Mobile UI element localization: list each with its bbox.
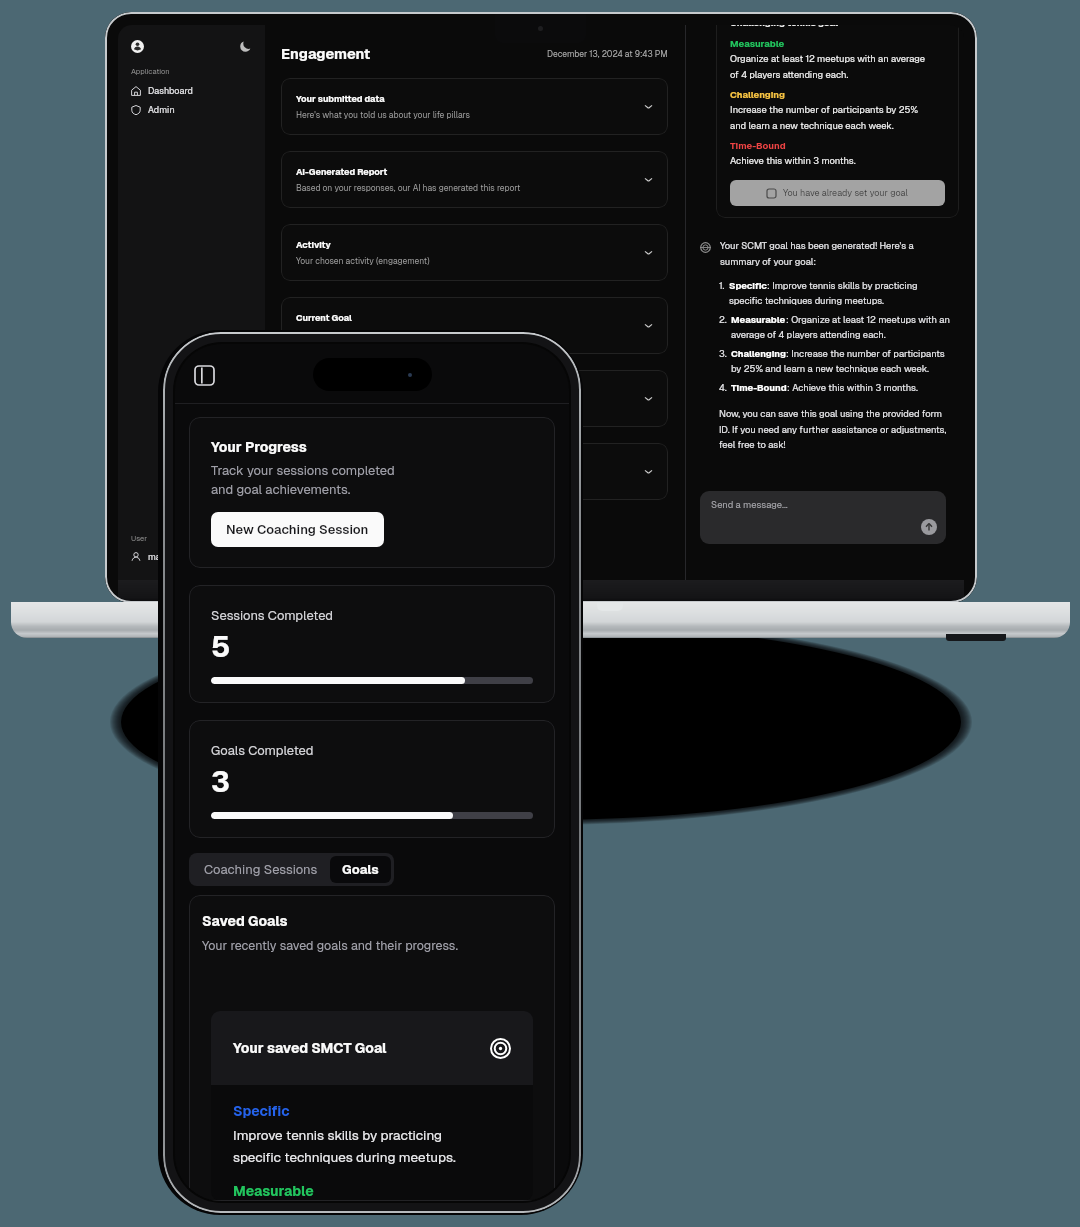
staticText: Challenging [731, 348, 786, 360]
staticText: Measurable [730, 38, 785, 50]
staticText: Based on your responses, our AI has gene… [296, 182, 521, 193]
staticText: User [131, 533, 147, 543]
staticText: Dashboard [148, 85, 193, 97]
button[interactable]: Send [921, 519, 937, 535]
staticText: Goals [342, 861, 379, 878]
staticText: Application [131, 66, 170, 76]
staticText: Track your sessions completed and goal a… [211, 462, 395, 498]
staticText: : Increase the number of participants [786, 348, 945, 360]
button[interactable]: Activity [281, 224, 668, 281]
staticText: Your Progress [211, 438, 307, 456]
button[interactable]: Dashboard [131, 85, 252, 97]
staticText: Now, you can save this goal using the pr… [719, 408, 947, 450]
staticText: Engagement [281, 44, 371, 63]
staticText: by 25% and learn a new technique each we… [731, 363, 929, 375]
button[interactable]: Reflection [281, 370, 668, 427]
staticText: Your recently saved goals and their prog… [202, 937, 458, 953]
staticText: : Organize at least 12 meetups with an [786, 314, 950, 326]
staticText: Your submitted data [296, 93, 385, 105]
button[interactable]: You have already set your goal [730, 180, 945, 206]
staticText: This is your goal to improve your engage… [296, 328, 473, 339]
staticText: Reflect on what you have learned [296, 401, 426, 412]
staticText: New Coaching Session [226, 521, 369, 538]
staticText: You have already set your goal [783, 187, 908, 199]
staticText: Sessions Completed [211, 607, 334, 624]
staticText: Your saved SMCT Goal [233, 1039, 387, 1057]
button[interactable]: Mute [161, 476, 164, 522]
staticText: Activity [296, 239, 331, 251]
staticText: : Improve tennis skills by practicing [767, 280, 918, 292]
staticText: : Achieve this within 3 months. [787, 382, 918, 394]
button[interactable]: Power [580, 674, 583, 786]
button[interactable]: Admin [131, 104, 252, 116]
staticText: Time-Bound [730, 140, 786, 152]
staticText: 5 [211, 628, 231, 666]
staticText: Current Goal [296, 312, 352, 324]
staticText: Coaching [296, 458, 338, 470]
staticText: 2. [719, 314, 727, 326]
staticText: AI-Generated Report [296, 166, 388, 178]
staticText: Saved Goals [202, 912, 288, 930]
staticText: 3 [211, 763, 230, 801]
staticText: 4. [719, 382, 727, 394]
staticText: specific techniques during meetups. [729, 295, 884, 307]
staticText: Your SCMT goal has been generated! Here'… [720, 240, 914, 267]
button[interactable]: New Coaching Session [211, 512, 384, 547]
staticText: December 13, 2024 at 9:43 PM [547, 48, 668, 59]
staticText: Improve tennis skills by practicing spec… [233, 1126, 456, 1166]
button[interactable]: Volume down [161, 693, 164, 757]
button[interactable]: Current Goal [281, 297, 668, 354]
staticText: Increase the number of participants by 2… [730, 104, 918, 131]
staticText: Organize at least 12 meetups with an ave… [730, 53, 926, 80]
button[interactable]: Coaching [281, 443, 668, 500]
button[interactable]: Your saved SMCT Goal [211, 1011, 533, 1085]
button[interactable]: ma [131, 551, 252, 563]
staticText: Measurable [233, 1182, 314, 1200]
staticText: Admin [148, 104, 175, 116]
staticText: ma [148, 551, 161, 563]
staticText: Reflection [296, 385, 342, 397]
staticText: Challenging tennis goal [730, 25, 839, 29]
button[interactable]: Profile [131, 40, 144, 53]
button[interactable]: Send a message... [700, 491, 946, 544]
button[interactable]: Toggle sidebar [193, 364, 215, 386]
button[interactable]: Volume up [161, 610, 164, 674]
staticText: average of 4 players attending each. [731, 329, 886, 341]
button[interactable]: AI-Generated Report [281, 151, 668, 208]
staticText: Measurable [731, 314, 786, 326]
staticText: 1. [719, 280, 725, 292]
staticText: Challenging [730, 89, 785, 101]
staticText: Time-Bound [731, 382, 787, 394]
staticText: Coaching Sessions [204, 861, 318, 878]
staticText: Send a message... [711, 499, 788, 511]
staticText: Achieve this within 3 months. [730, 155, 856, 167]
staticText: Goals Completed [211, 742, 314, 759]
staticText: Here's what you told us about your life … [296, 109, 470, 120]
staticText: Specific [233, 1102, 290, 1120]
button[interactable]: Your submitted data [281, 78, 668, 135]
staticText: 3. [719, 348, 727, 360]
button[interactable]: Coaching Sessions [192, 856, 330, 883]
button[interactable]: Goals [330, 856, 391, 883]
staticText: Chat with your AI coach to help you [296, 474, 434, 485]
staticText: Specific [729, 280, 767, 292]
button[interactable]: Toggle dark mode [238, 39, 252, 53]
staticText: Your chosen activity (engagement) [296, 255, 430, 266]
